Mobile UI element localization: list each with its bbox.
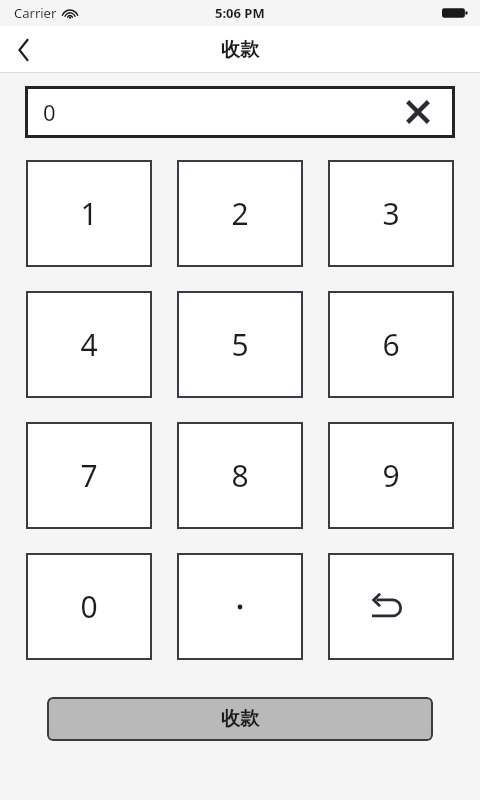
button[interactable] [177,553,303,660]
button[interactable]: Back [0,26,48,73]
button[interactable]: 0 [26,553,152,660]
staticText: 5 [231,324,249,365]
button[interactable]: 8 [177,422,303,529]
staticText: Carrier [14,4,57,22]
button[interactable]: Clear [401,95,435,129]
button[interactable]: 0 [25,86,455,138]
button[interactable]: 收款 [47,697,433,741]
button[interactable]: 6 [328,291,454,398]
staticText: 5:06 PM [215,4,265,22]
button[interactable]: 2 [177,160,303,267]
staticText: 3 [382,193,400,234]
staticText: 0 [43,97,56,127]
staticText: 6 [382,324,400,365]
staticText: 收款 [221,38,259,62]
staticText: 4 [80,324,98,365]
staticText: 9 [382,455,400,496]
button[interactable]: 3 [328,160,454,267]
staticText: 7 [80,455,98,496]
button[interactable]: 1 [26,160,152,267]
button[interactable]: 5 [177,291,303,398]
staticText: 2 [231,193,249,234]
staticText: 0 [80,586,98,627]
staticText: 收款 [221,707,259,731]
button[interactable]: 4 [26,291,152,398]
button[interactable]: 7 [26,422,152,529]
button[interactable]: Backspace [328,553,454,660]
button[interactable]: 9 [328,422,454,529]
staticText: 1 [80,193,98,234]
staticText: 8 [231,455,249,496]
